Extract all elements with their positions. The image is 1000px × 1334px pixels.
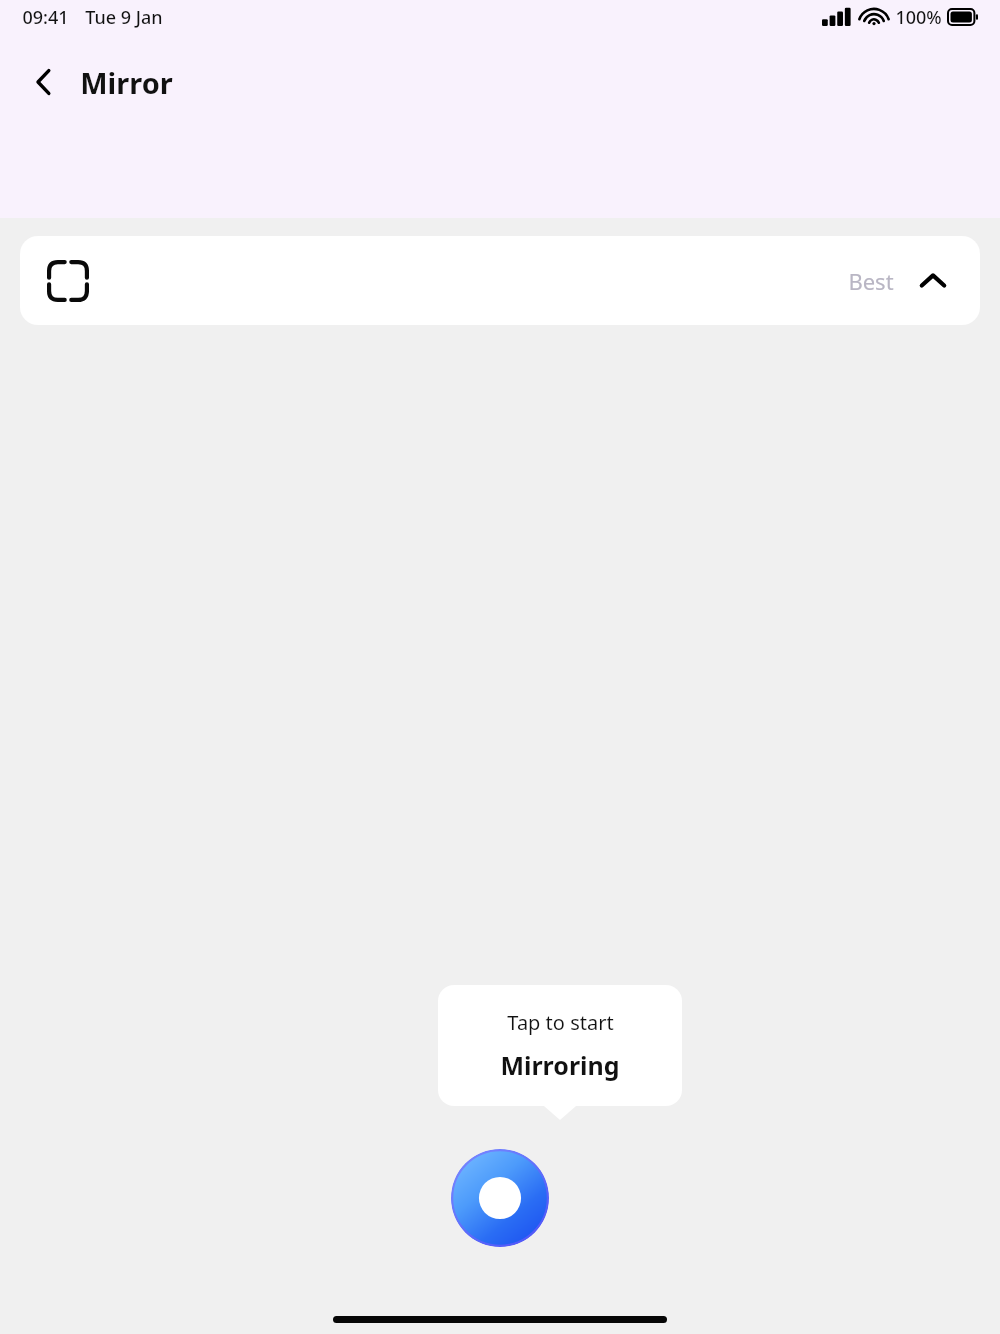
staticText: Best bbox=[848, 266, 894, 296]
staticText: Mirror bbox=[80, 63, 173, 102]
staticText: Mirroring bbox=[500, 1048, 620, 1082]
other: Screen area bbox=[44, 257, 92, 305]
staticText: 100% bbox=[895, 5, 942, 30]
staticText: 09:41 bbox=[22, 5, 69, 30]
button[interactable]: Back bbox=[20, 58, 68, 106]
staticText: Tue 9 Jan bbox=[85, 5, 163, 30]
button[interactable]: Start mirroring bbox=[451, 1149, 549, 1247]
button[interactable]: Screen area bbox=[20, 236, 980, 325]
staticText: Tap to start bbox=[507, 1009, 614, 1036]
